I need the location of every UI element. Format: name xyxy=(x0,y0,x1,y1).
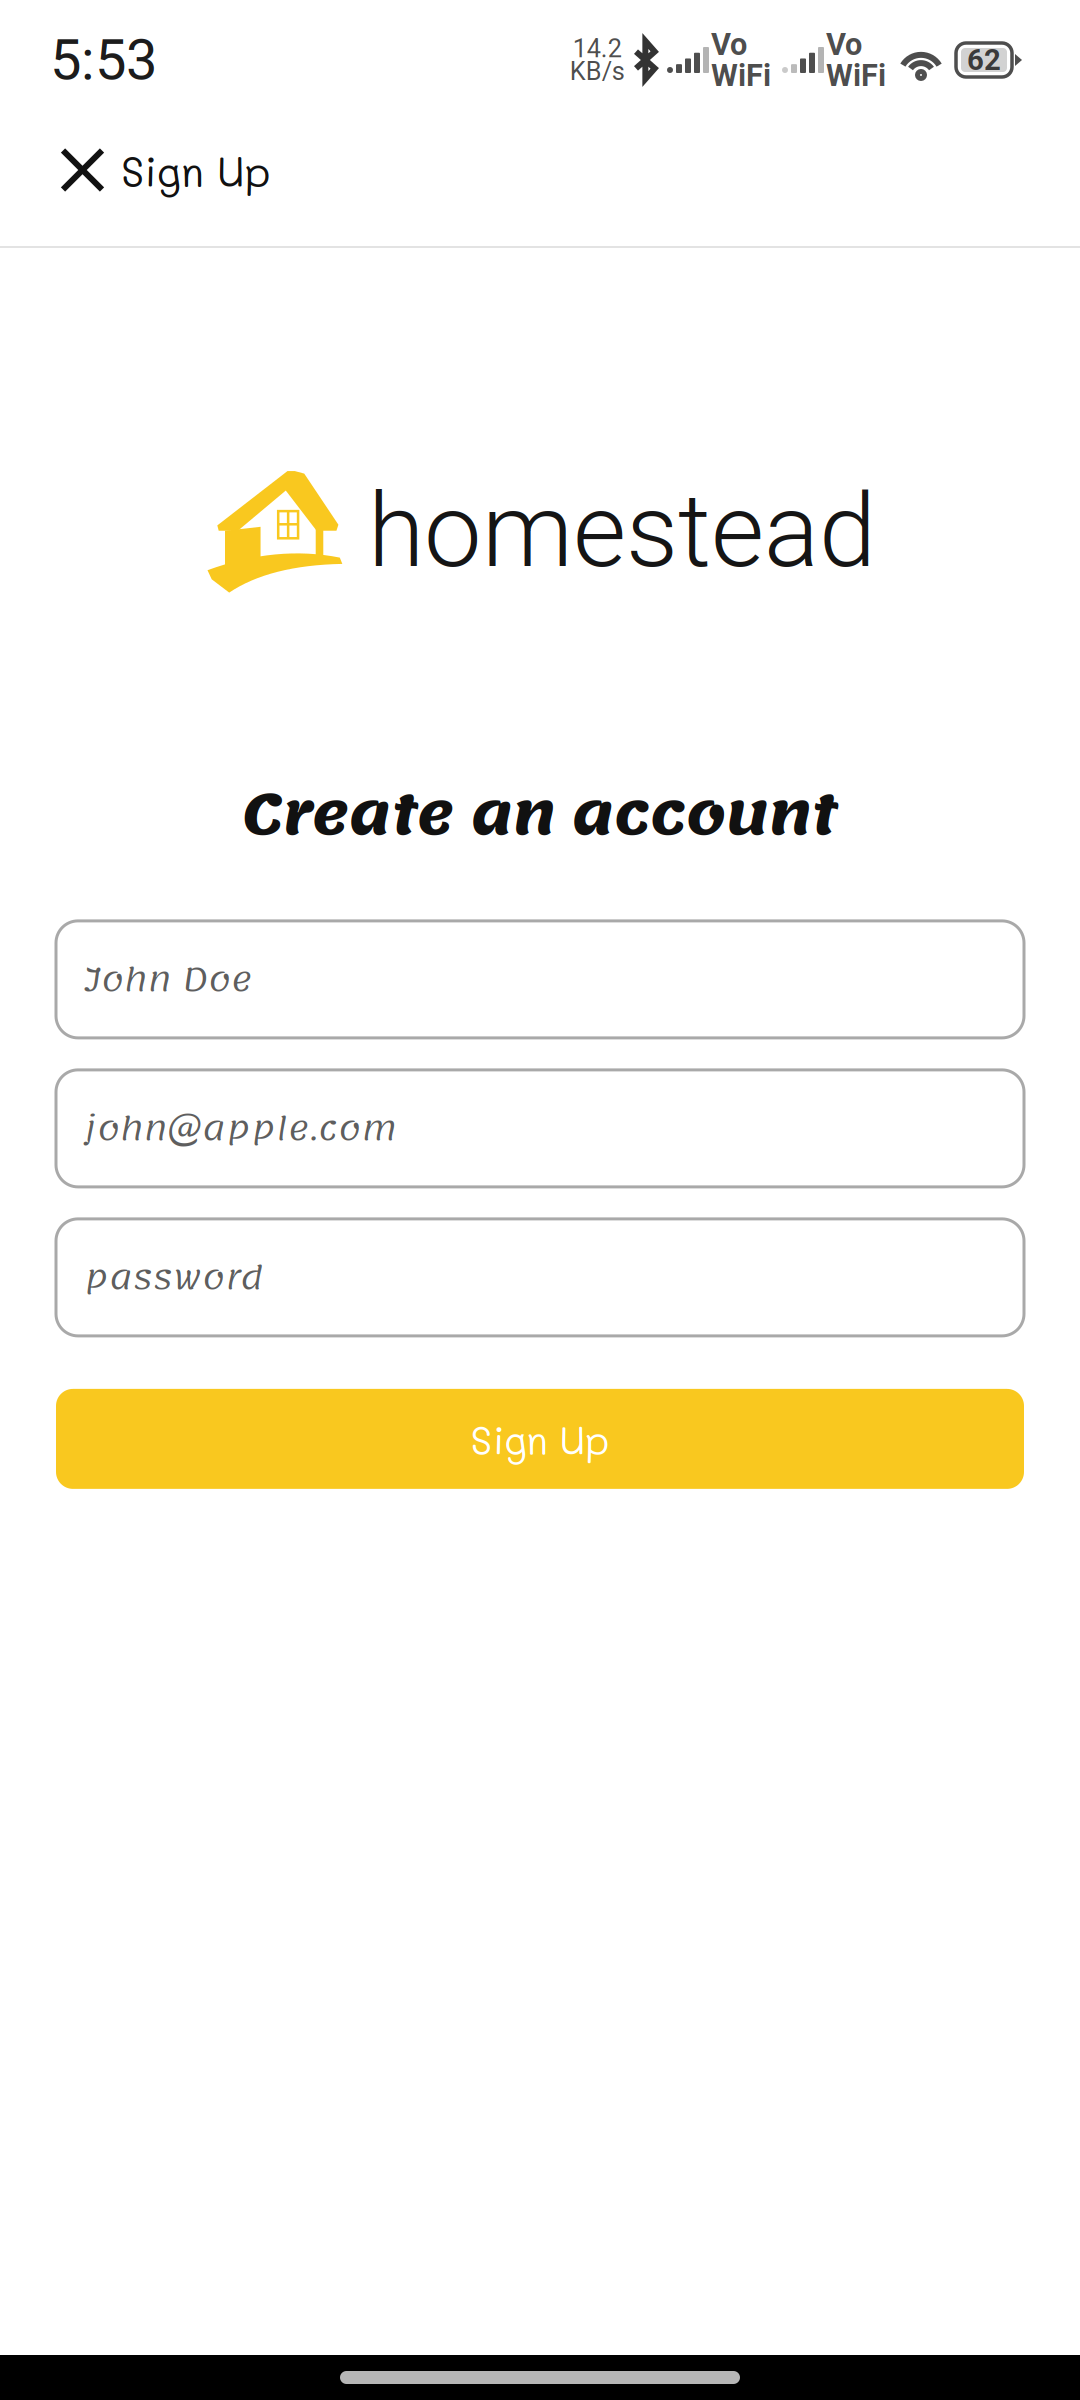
staticText: Vo xyxy=(826,27,862,62)
staticText: WiFi xyxy=(711,57,771,93)
staticText: WiFi xyxy=(826,57,886,93)
staticText: Create an account xyxy=(243,759,837,871)
staticText: 14.2 xyxy=(573,34,622,63)
staticText: 62 xyxy=(967,43,1001,77)
staticText: John Doe xyxy=(84,947,252,1011)
staticText: KB/s xyxy=(570,56,625,86)
button[interactable]: Close Sign Up xyxy=(0,120,1080,246)
staticText: Vo xyxy=(711,27,747,62)
button[interactable]: Sign Up xyxy=(56,1389,1024,1489)
staticText: Sign Up xyxy=(470,1414,609,1464)
staticText: Sign Up xyxy=(121,143,271,197)
staticText: john@apple.com xyxy=(84,1096,397,1160)
staticText: password xyxy=(84,1245,264,1309)
staticText: 5:53 xyxy=(50,27,157,93)
staticText: homestead xyxy=(368,471,876,591)
